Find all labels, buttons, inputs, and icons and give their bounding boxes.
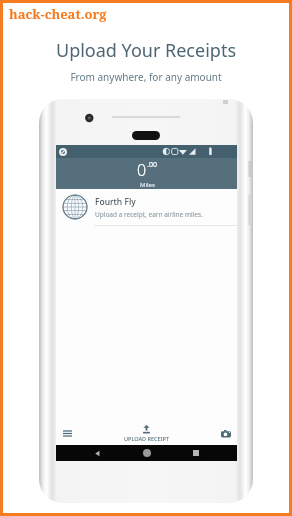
button[interactable]: UPLOAD RECEIPT xyxy=(79,422,214,445)
staticText: .00 xyxy=(147,160,157,170)
staticText: From anywhere, for any amount xyxy=(70,70,222,84)
staticText: hack-cheat.org xyxy=(9,5,107,23)
button[interactable]: Recents xyxy=(188,445,204,461)
button[interactable]: Camera xyxy=(214,422,237,445)
button[interactable]: Menu xyxy=(56,422,79,445)
button[interactable]: Fourth Fly xyxy=(56,189,237,225)
button[interactable]: Back xyxy=(89,445,105,461)
button[interactable]: Home xyxy=(139,445,155,461)
staticText: Miles xyxy=(140,181,155,189)
staticText: Upload a receipt, earn airline miles. xyxy=(95,210,203,219)
staticText: Fourth Fly xyxy=(95,196,136,208)
staticText: Upload Your Receipts xyxy=(56,38,236,63)
staticText: UPLOAD RECEIPT xyxy=(124,435,169,442)
staticText: 0 xyxy=(137,159,147,181)
